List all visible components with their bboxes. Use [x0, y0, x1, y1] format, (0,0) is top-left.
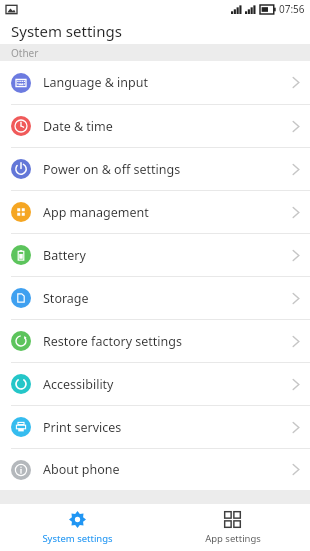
- staticText: 07:56: [279, 2, 305, 16]
- button[interactable]: About phone: [0, 449, 310, 490]
- staticText: Date & time: [43, 118, 113, 135]
- staticText: Storage: [43, 290, 89, 307]
- staticText: Battery: [43, 247, 86, 264]
- staticText: Power on & off settings: [43, 161, 181, 178]
- staticText: Print services: [43, 419, 122, 436]
- button[interactable]: Print services: [0, 406, 310, 448]
- staticText: Accessibility: [43, 376, 114, 393]
- staticText: App management: [43, 204, 149, 221]
- staticText: Restore factory settings: [43, 333, 182, 350]
- staticText: Other: [11, 46, 39, 60]
- staticText: App settings: [205, 532, 261, 545]
- staticText: System settings: [11, 21, 122, 41]
- button[interactable]: System settings: [0, 504, 155, 551]
- button[interactable]: Language & input: [0, 61, 310, 104]
- staticText: Language & input: [43, 74, 148, 91]
- button[interactable]: Storage: [0, 277, 310, 319]
- button[interactable]: Date & time: [0, 105, 310, 147]
- button[interactable]: Power on & off settings: [0, 148, 310, 190]
- button[interactable]: Battery: [0, 234, 310, 276]
- button[interactable]: App management: [0, 191, 310, 233]
- button[interactable]: Accessibility: [0, 363, 310, 405]
- button[interactable]: Restore factory settings: [0, 320, 310, 362]
- staticText: System settings: [42, 532, 113, 545]
- staticText: About phone: [43, 461, 120, 478]
- button[interactable]: App settings: [155, 504, 310, 551]
